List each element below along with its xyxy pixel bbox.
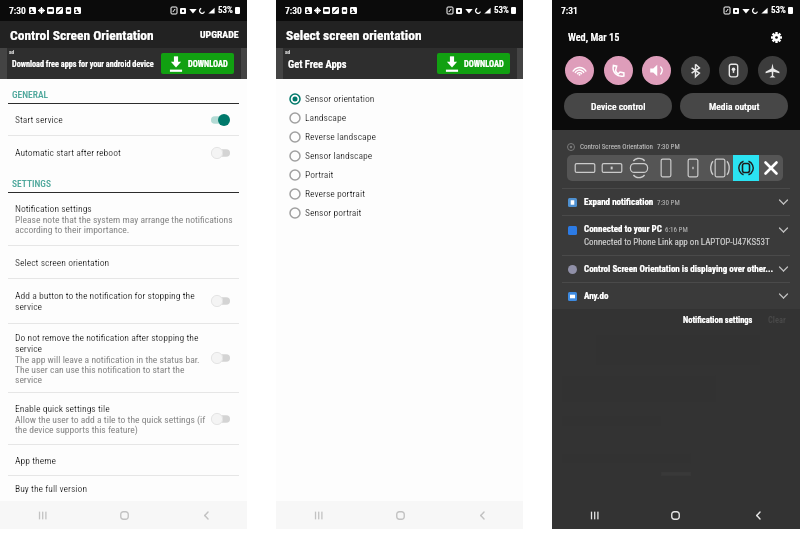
- button[interactable]: Home: [83, 501, 165, 529]
- staticText: Reverse landscape: [305, 131, 376, 142]
- staticText: Get Free Apps: [288, 58, 436, 70]
- button[interactable]: Enable quick settings tile: [0, 393, 247, 444]
- staticText: Allow the user to add a tile to the quic…: [15, 414, 206, 435]
- staticText: Sensor landscape: [305, 150, 373, 161]
- staticText: The app will leave a notification in the…: [15, 354, 206, 385]
- staticText: ad: [285, 49, 291, 55]
- button[interactable]: Home: [359, 501, 441, 529]
- button[interactable]: Add a button to the notification for sto…: [0, 279, 247, 323]
- button[interactable]: Reverse portrait: [276, 184, 523, 203]
- staticText: Start service: [15, 114, 63, 125]
- button[interactable]: Select screen orientation: [276, 21, 523, 48]
- staticText: Do not remove the notification after sto…: [15, 332, 206, 354]
- staticText: Notification settings: [15, 203, 92, 214]
- staticText: 7:30: [285, 5, 302, 16]
- staticText: Sensor portrait: [305, 207, 362, 218]
- button[interactable]: Sensor orientation: [276, 89, 523, 108]
- button[interactable]: Any.do: [552, 283, 800, 309]
- staticText: Media output: [709, 101, 760, 112]
- button[interactable]: Recent apps: [0, 501, 83, 529]
- staticText: 7:30 PM: [657, 143, 680, 151]
- button[interactable]: Media output: [680, 93, 788, 119]
- button[interactable]: Portrait: [652, 155, 679, 181]
- staticText: Download free apps for your android devi…: [12, 59, 160, 69]
- button[interactable]: Do not remove the notification after sto…: [0, 324, 247, 392]
- staticText: App theme: [15, 455, 56, 466]
- staticText: 7:31: [561, 5, 578, 16]
- button[interactable]: Automatic start after reboot: [0, 136, 247, 169]
- staticText: Automatic start after reboot: [15, 147, 121, 158]
- button[interactable]: Wi-Fi: [565, 56, 594, 85]
- staticText: Control Screen Orientation is displaying…: [584, 264, 774, 275]
- button[interactable]: Screen lock: [719, 56, 748, 85]
- staticText: Any.do: [584, 291, 609, 302]
- button[interactable]: Reverse landscape: [276, 127, 523, 146]
- staticText: 53%: [771, 5, 786, 16]
- button[interactable]: Recent apps: [276, 501, 359, 529]
- button[interactable]: Settings: [769, 30, 784, 45]
- staticText: SETTINGS: [12, 178, 51, 189]
- button[interactable]: Sensor portrait: [706, 155, 733, 181]
- button[interactable]: Auto rotate: [733, 155, 759, 181]
- staticText: 6:16 PM: [665, 226, 688, 234]
- staticText: Connected to Phone Link app on LAPTOP-U4…: [584, 237, 770, 248]
- button[interactable]: Notification settings: [0, 193, 247, 245]
- button[interactable]: Start service: [0, 104, 247, 135]
- staticText: Control Screen Orientation: [10, 27, 154, 43]
- staticText: Expand notification: [584, 197, 654, 208]
- button[interactable]: Control Screen Orientation: [552, 130, 800, 188]
- button[interactable]: Device control: [564, 93, 672, 119]
- staticText: DOWNLOAD: [188, 59, 228, 69]
- staticText: Buy the full version: [15, 483, 88, 494]
- button[interactable]: Home: [634, 501, 717, 529]
- staticText: Reverse portrait: [305, 188, 365, 199]
- button[interactable]: Control Screen Orientation is displaying…: [552, 256, 800, 282]
- button[interactable]: UPGRADE: [200, 29, 239, 40]
- button[interactable]: Back: [717, 501, 800, 529]
- staticText: Enable quick settings tile: [15, 403, 110, 414]
- button[interactable]: App theme: [0, 445, 247, 475]
- staticText: Wed, Mar 15: [568, 31, 620, 43]
- staticText: Landscape: [305, 112, 347, 123]
- button[interactable]: Connected to your PC: [552, 216, 800, 255]
- button[interactable]: Close: [759, 155, 783, 181]
- staticText: Add a button to the notification for sto…: [15, 290, 206, 312]
- button[interactable]: DOWNLOAD: [161, 53, 234, 74]
- button[interactable]: Sensor landscape: [276, 146, 523, 165]
- button[interactable]: Reverse portrait: [679, 155, 706, 181]
- staticText: 53%: [218, 5, 233, 16]
- button[interactable]: Control Screen Orientation: [0, 21, 247, 48]
- button[interactable]: DOWNLOAD: [437, 53, 510, 74]
- button[interactable]: Airplane mode: [758, 56, 787, 85]
- staticText: Device control: [591, 101, 646, 112]
- staticText: Portrait: [305, 169, 334, 180]
- staticText: Connected to your PC: [584, 224, 662, 235]
- button[interactable]: Sound: [642, 56, 671, 85]
- staticText: Select screen orientation: [15, 257, 110, 268]
- button[interactable]: Clear: [768, 315, 786, 325]
- button[interactable]: Landscape: [571, 155, 598, 181]
- button[interactable]: Expand notification: [552, 189, 800, 215]
- button[interactable]: Portrait: [276, 165, 523, 184]
- button[interactable]: Notification settings: [683, 315, 753, 325]
- button[interactable]: Back: [441, 501, 523, 529]
- button[interactable]: Sensor portrait: [276, 203, 523, 222]
- button[interactable]: Sensor landscape: [625, 155, 652, 181]
- button[interactable]: Select screen orientation: [0, 246, 247, 278]
- staticText: 7:30: [9, 5, 26, 16]
- staticText: DOWNLOAD: [464, 59, 504, 69]
- button[interactable]: Mobile data: [604, 56, 633, 85]
- button[interactable]: Recent apps: [552, 501, 634, 529]
- staticText: Please note that the system may arrange …: [15, 214, 236, 235]
- button[interactable]: Reverse landscape: [598, 155, 625, 181]
- button[interactable]: Buy the full version: [0, 476, 247, 501]
- button[interactable]: Bluetooth: [681, 56, 710, 85]
- staticText: 53%: [494, 5, 509, 16]
- button[interactable]: Landscape: [276, 108, 523, 127]
- staticText: ad: [9, 49, 15, 55]
- staticText: Select screen orientation: [286, 27, 422, 43]
- button[interactable]: Back: [165, 501, 247, 529]
- staticText: GENERAL: [12, 89, 49, 100]
- staticText: 7:30 PM: [657, 199, 680, 207]
- staticText: Sensor orientation: [305, 93, 375, 104]
